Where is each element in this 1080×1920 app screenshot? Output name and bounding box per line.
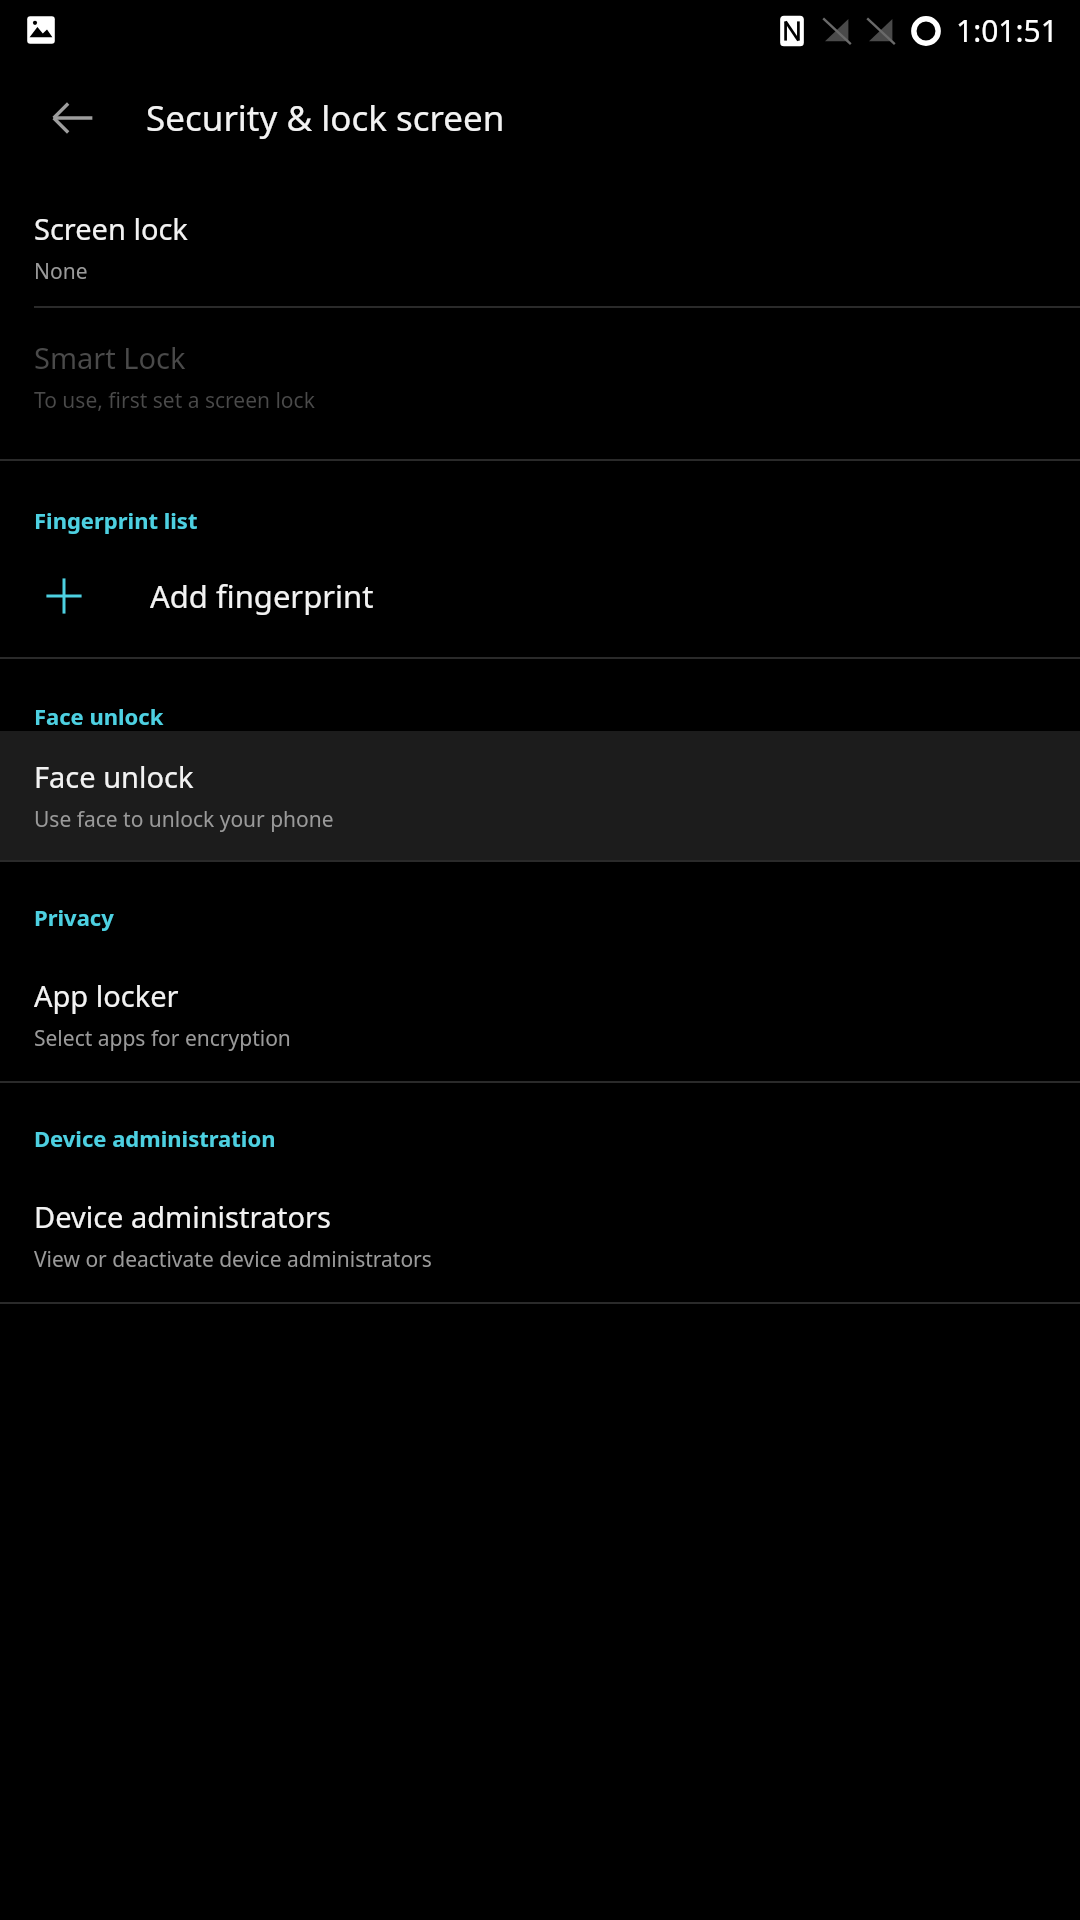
staticText: Face unlock: [34, 701, 164, 731]
staticText: 1:01:51: [956, 10, 1058, 51]
staticText: Select apps for encryption: [34, 1024, 291, 1053]
staticText: Screen lock: [34, 209, 188, 248]
button[interactable]: Add fingerprint: [0, 535, 1080, 657]
staticText: None: [34, 257, 88, 286]
button[interactable]: Screen lock: [0, 201, 1080, 306]
staticText: Fingerprint list: [34, 505, 198, 535]
button[interactable]: Device administrators: [0, 1153, 1080, 1302]
button[interactable]: Back: [40, 85, 106, 151]
button[interactable]: Smart Lock: [0, 330, 1080, 437]
staticText: Use face to unlock your phone: [34, 805, 334, 834]
staticText: Privacy: [34, 902, 114, 932]
staticText: Security & lock screen: [146, 94, 505, 142]
staticText: Add fingerprint: [150, 575, 374, 617]
staticText: Smart Lock: [34, 338, 186, 377]
other: Add fingerprint: [44, 576, 84, 616]
staticText: To use, first set a screen lock: [34, 386, 315, 415]
button[interactable]: App locker: [0, 932, 1080, 1081]
staticText: Face unlock: [34, 757, 194, 796]
staticText: App locker: [34, 976, 179, 1015]
staticText: Device administration: [34, 1123, 276, 1153]
staticText: View or deactivate device administrators: [34, 1245, 432, 1274]
button[interactable]: Face unlock: [0, 731, 1080, 860]
staticText: Device administrators: [34, 1197, 331, 1236]
